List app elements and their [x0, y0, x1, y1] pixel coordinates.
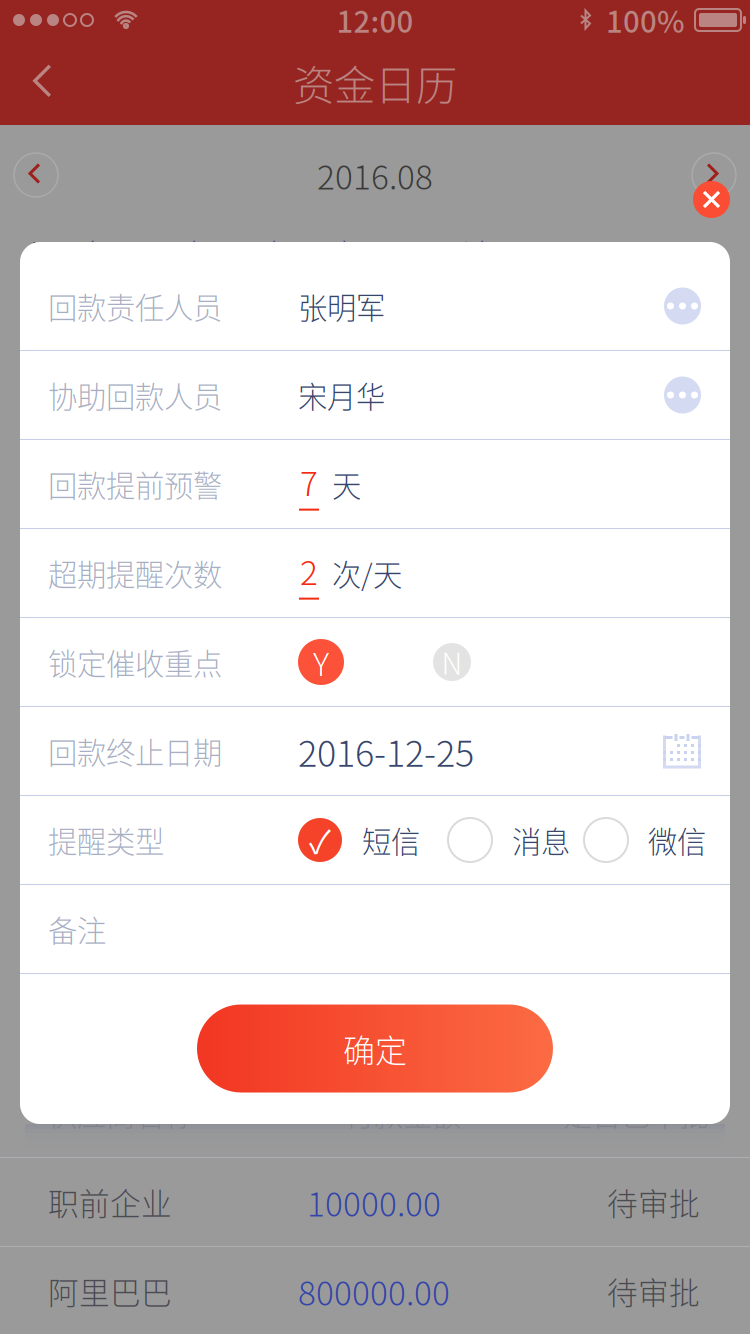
button[interactable]: 超期提醒次数	[298, 553, 320, 593]
staticText: Y	[313, 639, 329, 685]
button[interactable]: 微信	[584, 818, 710, 862]
staticText: 备注	[48, 908, 106, 950]
button[interactable]: 不锁定	[433, 643, 471, 681]
staticText: Thursday	[326, 232, 426, 268]
staticText: 职前企业	[48, 1180, 172, 1224]
staticText: 资金日历	[293, 53, 457, 112]
staticText: N	[441, 641, 462, 683]
staticText: 协助回款人员	[48, 374, 222, 416]
button[interactable]: 提前预警天数	[298, 464, 320, 504]
staticText: 微信	[648, 819, 706, 861]
staticText: 10000.00	[307, 1178, 441, 1226]
staticText: 付款金额	[345, 1092, 461, 1134]
button[interactable]: 选择回款责任人员	[664, 287, 701, 324]
button[interactable]: Back	[0, 40, 88, 125]
staticText: 张明军	[298, 285, 385, 327]
button[interactable]: 下个月	[692, 153, 736, 197]
staticText: 2016.08	[317, 151, 433, 199]
button[interactable]: 确定	[197, 1004, 553, 1092]
staticText: 待审批	[607, 1269, 700, 1313]
staticText: 2	[300, 546, 318, 595]
staticText: 2016-12-25	[298, 725, 474, 777]
staticText: 800000.00	[298, 1267, 450, 1315]
staticText: Monday	[30, 232, 121, 268]
staticText: Tuesday	[129, 232, 223, 268]
staticText: 宋月华	[298, 374, 385, 416]
staticText: 是否已审批	[563, 1092, 708, 1134]
staticText: 回款提前预警	[48, 463, 222, 505]
staticText: 供应商名称	[48, 1092, 193, 1134]
staticText: 回款责任人员	[48, 285, 222, 327]
staticText: 超期提醒次数	[48, 552, 222, 594]
staticText: 消息	[512, 819, 570, 861]
staticText: 锁定催收重点	[48, 641, 222, 683]
staticText: 次/天	[332, 552, 402, 594]
staticText: S	[668, 232, 683, 268]
staticText: 天	[332, 463, 361, 505]
staticText: Friday	[441, 232, 511, 268]
staticText: 100%	[606, 0, 685, 41]
staticText: 阿里巴巴	[48, 1269, 172, 1313]
staticText: 12:00	[336, 0, 413, 41]
button[interactable]: 选择日期	[663, 734, 701, 768]
staticText: 确定	[343, 1025, 407, 1072]
staticText: 待审批	[607, 1180, 700, 1224]
staticText: Wednesday	[226, 232, 326, 268]
staticText: ✓	[309, 817, 331, 863]
staticText: 回款终止日期	[48, 730, 222, 772]
staticText: 7	[300, 457, 318, 506]
staticText: 短信	[362, 819, 420, 861]
button[interactable]: 选择协助回款人员	[664, 376, 701, 413]
button[interactable]: ✓	[298, 818, 448, 862]
staticText: 提醒类型	[48, 819, 164, 861]
button[interactable]: 上个月	[14, 153, 58, 197]
staticText: Saturday	[526, 232, 626, 268]
button[interactable]: 关闭	[693, 181, 730, 218]
button[interactable]: 锁定	[298, 639, 344, 685]
button[interactable]: 消息	[448, 818, 584, 862]
